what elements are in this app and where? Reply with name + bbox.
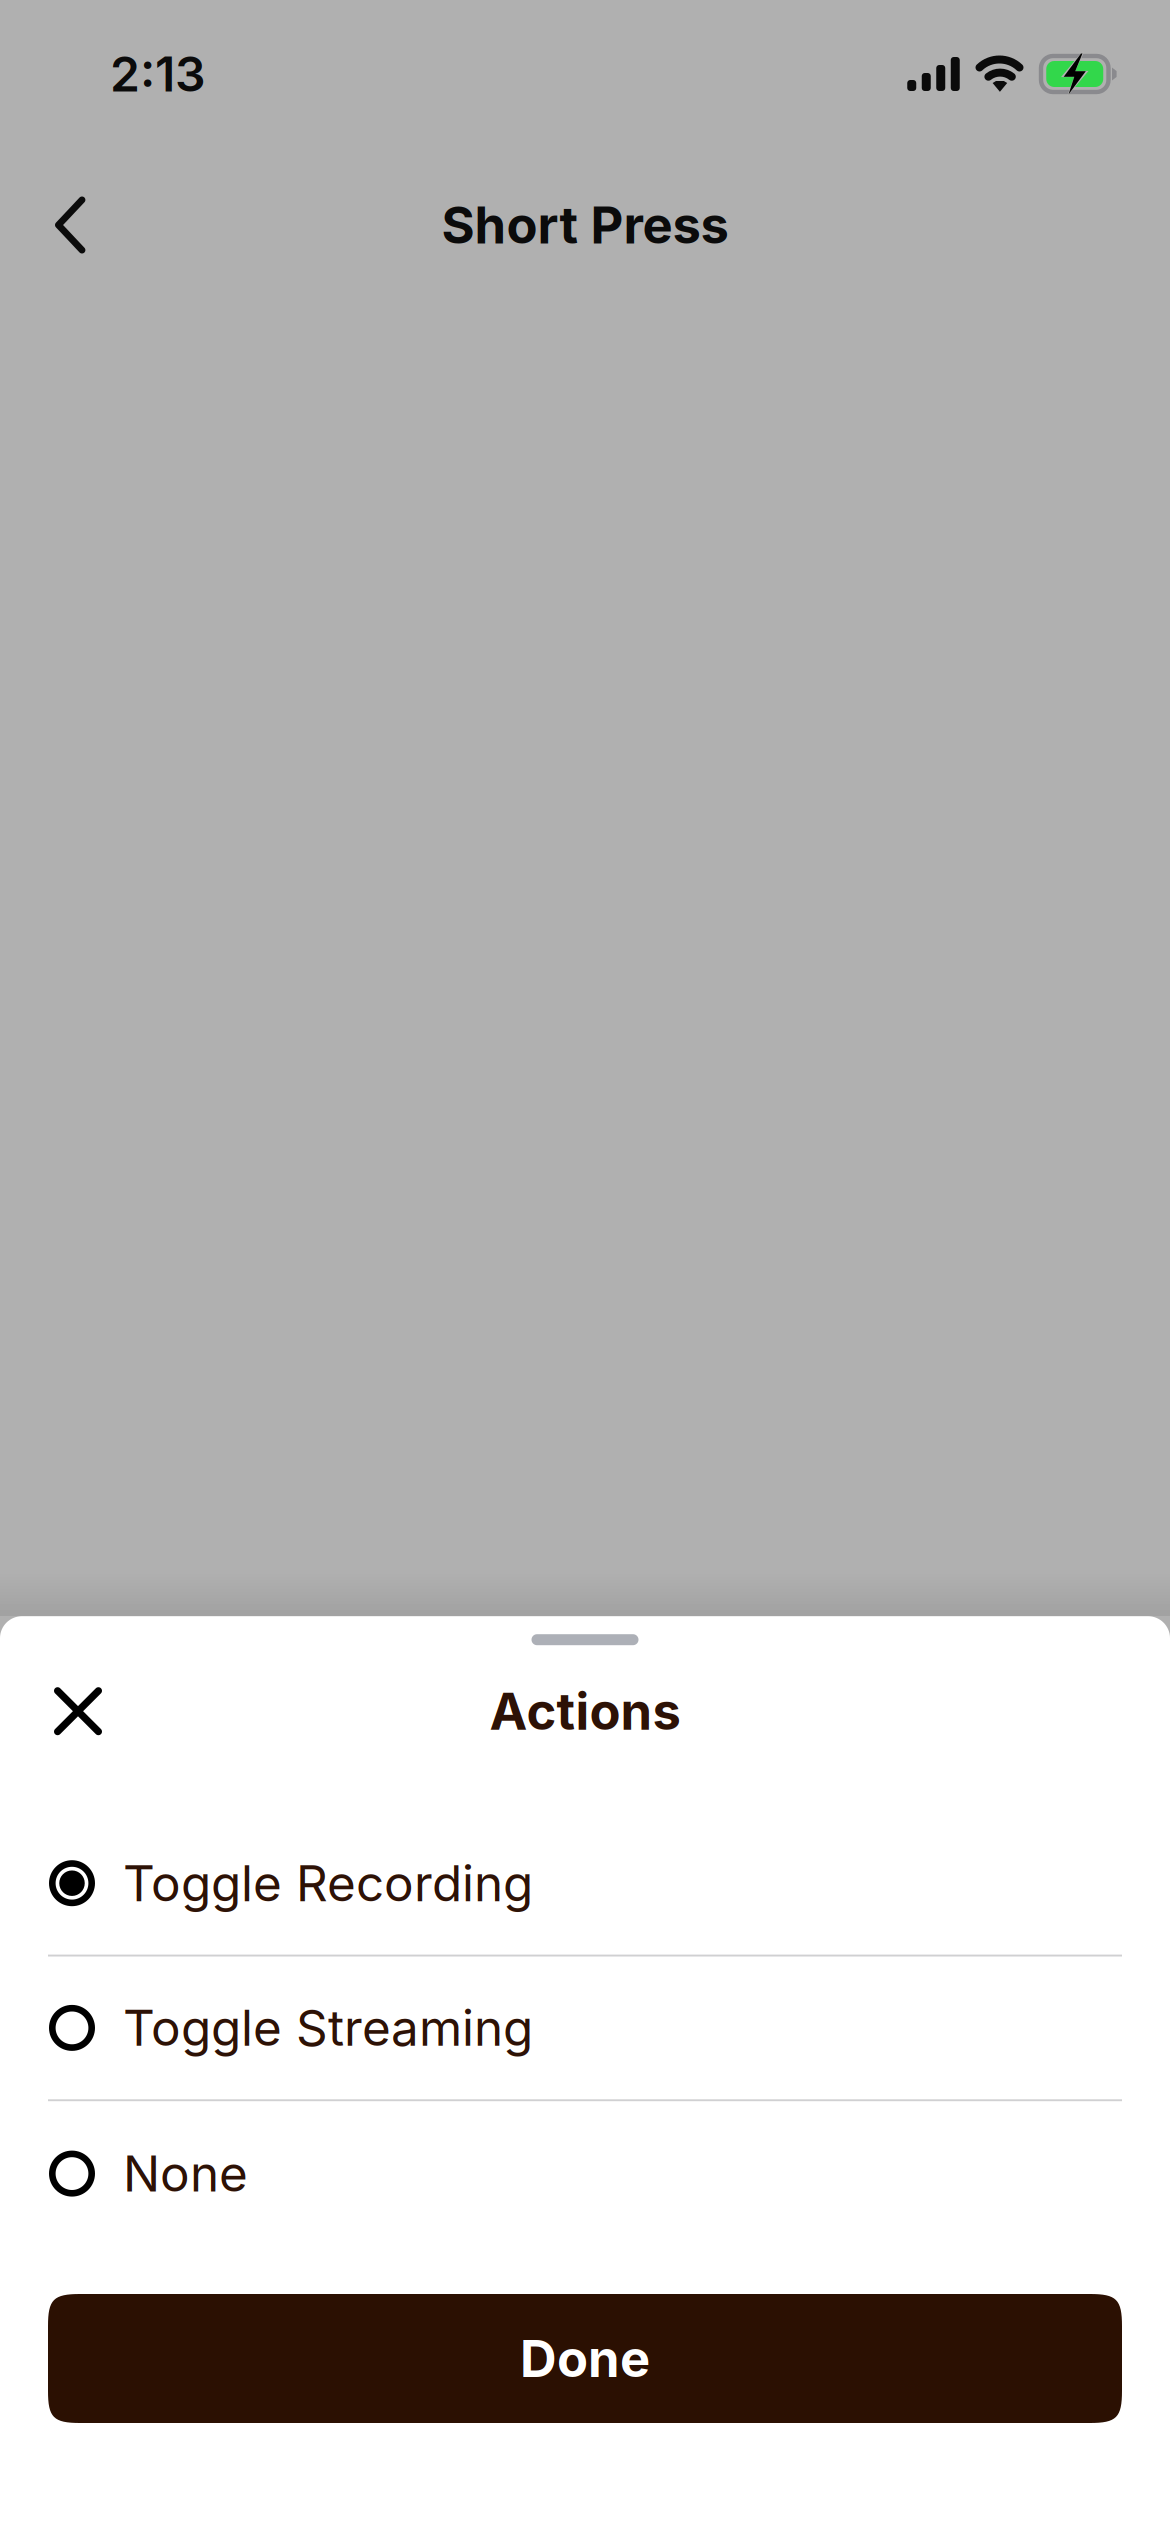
- staticText: Toggle Recording: [123, 1853, 533, 1913]
- button[interactable]: Toggle Streaming: [0, 1956, 1170, 2099]
- staticText: Actions: [489, 1680, 680, 1742]
- button[interactable]: Close: [24, 1683, 132, 1739]
- staticText: Toggle Streaming: [123, 1998, 533, 2058]
- staticText: Short Press: [441, 194, 728, 256]
- staticText: None: [123, 2144, 248, 2203]
- button[interactable]: Back: [25, 177, 115, 273]
- button[interactable]: Done: [48, 2294, 1122, 2423]
- staticText: 2:13: [110, 45, 206, 103]
- button[interactable]: None: [0, 2101, 1170, 2246]
- staticText: Done: [520, 2328, 650, 2389]
- button[interactable]: Toggle Recording: [0, 1812, 1170, 1955]
